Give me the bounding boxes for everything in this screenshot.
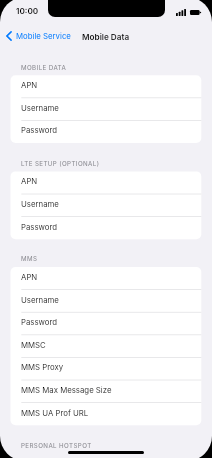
staticText: MMS (21, 255, 38, 263)
staticText: APN (21, 80, 38, 89)
button[interactable]: Username (11, 98, 202, 121)
button[interactable]: Password (11, 120, 202, 143)
button[interactable]: MMSC (11, 335, 202, 358)
button[interactable]: Username (11, 194, 202, 217)
staticText: Password (21, 125, 58, 134)
staticText: APN (21, 272, 38, 281)
button[interactable]: Password (11, 217, 202, 240)
other: Back (6, 31, 12, 41)
staticText: MOBILE DATA (21, 64, 67, 72)
button[interactable]: Username (11, 290, 202, 313)
staticText: PERSONAL HOTSPOT (21, 442, 92, 450)
staticText: Username (21, 295, 59, 304)
staticText: Password (21, 222, 58, 231)
button[interactable]: APN (11, 75, 202, 98)
button[interactable]: APN (11, 171, 202, 194)
button[interactable]: APN (11, 267, 202, 290)
staticText: LTE SETUP (OPTIONAL) (21, 160, 100, 168)
staticText: Password (21, 317, 58, 326)
staticText: MMS UA Prof URL (21, 408, 89, 417)
staticText: 10:00 (16, 6, 39, 16)
button[interactable]: Password (11, 312, 202, 335)
staticText: Mobile Data (82, 32, 130, 42)
staticText: Mobile Service (16, 31, 71, 40)
staticText: APN (21, 176, 38, 185)
staticText: Username (21, 103, 59, 112)
staticText: MMS Proxy (21, 362, 64, 371)
staticText: MMSC (21, 340, 46, 349)
button[interactable]: Back (4, 29, 75, 43)
button[interactable]: MMS Max Message Size (11, 380, 202, 403)
button[interactable]: MMS UA Prof URL (11, 403, 202, 426)
staticText: Username (21, 199, 59, 208)
button[interactable]: MMS Proxy (11, 357, 202, 380)
staticText: MMS Max Message Size (21, 385, 112, 394)
